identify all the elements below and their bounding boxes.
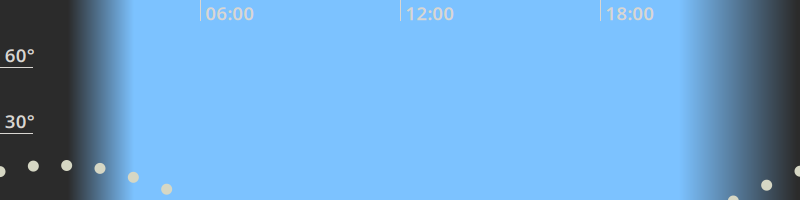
staticText: 12:00 bbox=[405, 1, 454, 25]
staticText: 30° bbox=[5, 109, 35, 133]
staticText: 06:00 bbox=[205, 1, 254, 25]
staticText: 18:00 bbox=[605, 1, 654, 25]
staticText: 60° bbox=[5, 43, 35, 67]
